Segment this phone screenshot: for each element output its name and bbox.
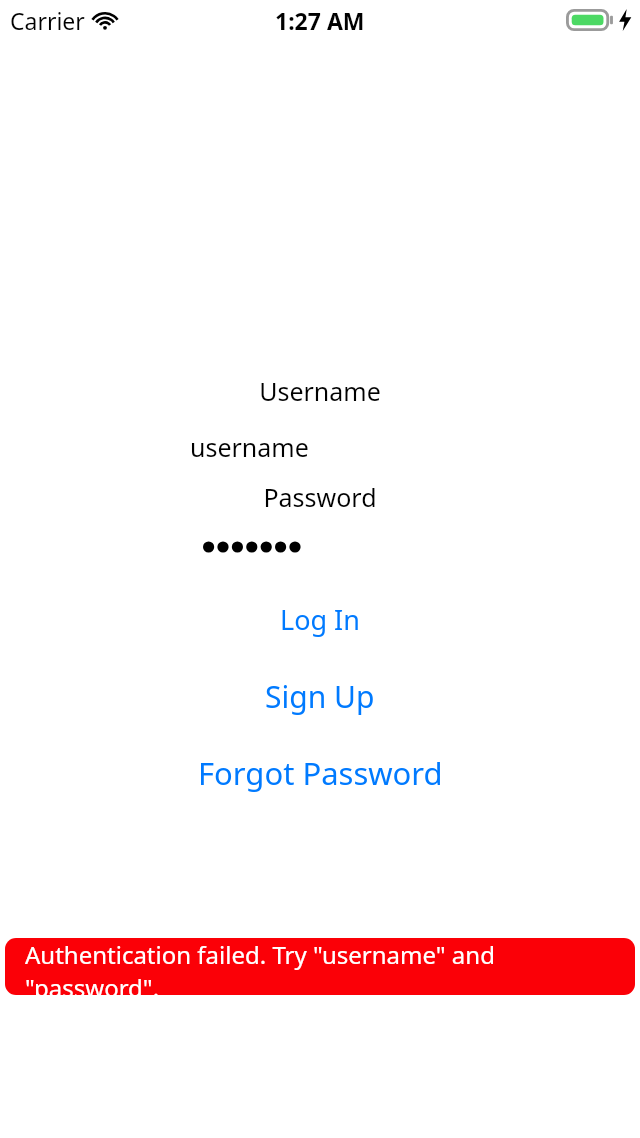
staticText: Password — [0, 480, 640, 514]
button[interactable]: Forgot Password — [0, 752, 640, 794]
staticText: Forgot Password — [198, 752, 443, 794]
other: Wi-Fi signal — [93, 12, 117, 30]
button[interactable]: username — [190, 430, 450, 464]
staticText: Log In — [280, 601, 360, 638]
staticText: Username — [0, 374, 640, 408]
other: Battery charging — [566, 9, 614, 31]
button[interactable]: Authentication failed. Try "username" an… — [5, 938, 635, 995]
other: Charging — [618, 9, 632, 31]
staticText: Authentication failed. Try "username" an… — [25, 938, 635, 995]
button[interactable]: Sign Up — [0, 675, 640, 717]
button[interactable] — [190, 532, 450, 562]
staticText: Carrier — [10, 5, 85, 36]
staticText: 1:27 AM — [275, 5, 365, 36]
staticText: username — [190, 430, 309, 464]
staticText: Sign Up — [265, 676, 375, 717]
button[interactable]: Log In — [0, 600, 640, 638]
